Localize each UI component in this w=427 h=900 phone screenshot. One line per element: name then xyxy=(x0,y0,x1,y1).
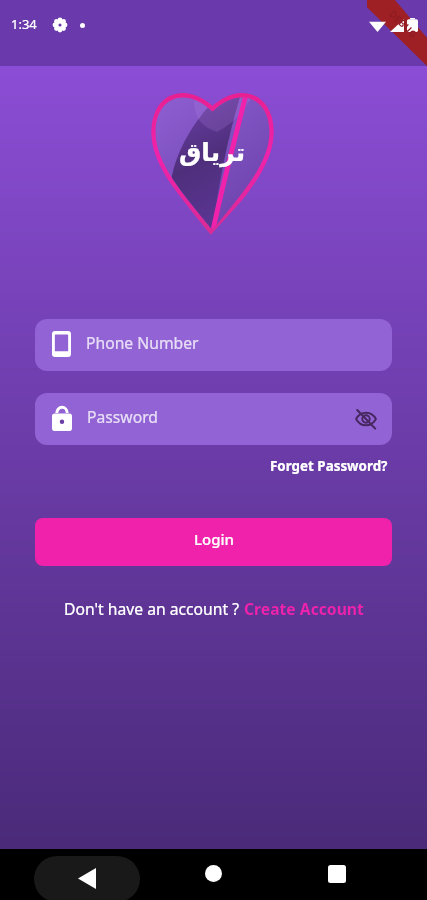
staticText: Forget Password? xyxy=(270,457,388,475)
staticText: Don't have an account ? xyxy=(64,598,244,619)
button[interactable]: Phone Number xyxy=(35,319,392,371)
staticText: ترياق xyxy=(179,138,246,167)
button[interactable]: Show password xyxy=(354,407,378,431)
staticText: Login xyxy=(194,529,234,549)
staticText: DEBUG xyxy=(386,7,421,41)
button[interactable]: Forget Password? xyxy=(262,452,396,480)
button[interactable]: Create Account xyxy=(244,598,364,619)
button[interactable]: Login xyxy=(35,518,392,566)
staticText: Phone Number xyxy=(86,332,199,353)
button[interactable]: Back xyxy=(34,856,140,900)
button[interactable]: Password xyxy=(35,393,392,445)
button[interactable]: Recent apps xyxy=(328,865,346,883)
staticText: Create Account xyxy=(244,598,364,619)
staticText: Password xyxy=(87,406,158,427)
staticText: 1:34 xyxy=(11,15,37,33)
button[interactable]: Home xyxy=(205,865,222,882)
